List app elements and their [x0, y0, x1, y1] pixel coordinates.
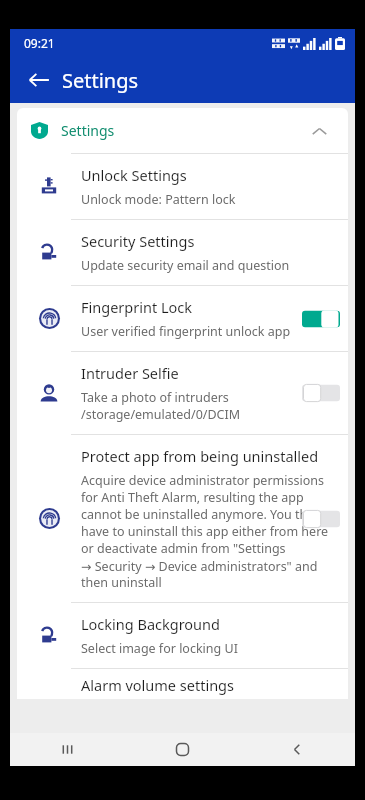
- staticText: Fingerprint Lock: [81, 297, 192, 317]
- button[interactable]: Alarm volume settings: [17, 669, 348, 699]
- staticText: Select image for locking UI: [81, 640, 238, 657]
- staticText: Intruder Selfie: [81, 363, 179, 383]
- staticText: Unlock Settings: [81, 165, 187, 185]
- button[interactable]: Back: [240, 733, 355, 766]
- staticText: Unlock mode: Pattern lock: [81, 191, 236, 208]
- button[interactable]: Security Settings: [17, 220, 348, 285]
- staticText: Settings: [61, 121, 115, 140]
- button[interactable]: Unlock Settings: [17, 154, 348, 219]
- staticText: User verified fingerprint unlock app: [81, 323, 291, 340]
- button[interactable]: Back: [22, 63, 56, 97]
- staticText: Update security email and question: [81, 257, 290, 274]
- staticText: Acquire device administrator permissions…: [81, 472, 334, 591]
- button[interactable]: Settings: [17, 108, 348, 153]
- staticText: Settings: [62, 67, 139, 94]
- staticText: Security Settings: [81, 231, 195, 251]
- button[interactable]: Toggle on: [302, 309, 340, 329]
- button[interactable]: Fingerprint Lock: [17, 286, 348, 351]
- button[interactable]: Protect app from being uninstalled: [17, 435, 348, 602]
- button[interactable]: Toggle off: [302, 383, 340, 403]
- button[interactable]: Locking Background: [17, 603, 348, 668]
- staticText: Locking Background: [81, 614, 220, 634]
- button[interactable]: Home: [125, 733, 240, 766]
- staticText: Protect app from being uninstalled: [81, 446, 319, 466]
- staticText: 09:21: [24, 35, 55, 51]
- staticText: Take a photo of intruders /storage/emula…: [81, 389, 241, 423]
- staticText: Alarm volume settings: [81, 675, 234, 695]
- button[interactable]: Toggle off: [302, 509, 340, 529]
- button[interactable]: Recents: [10, 733, 125, 766]
- button[interactable]: Intruder Selfie: [17, 352, 348, 434]
